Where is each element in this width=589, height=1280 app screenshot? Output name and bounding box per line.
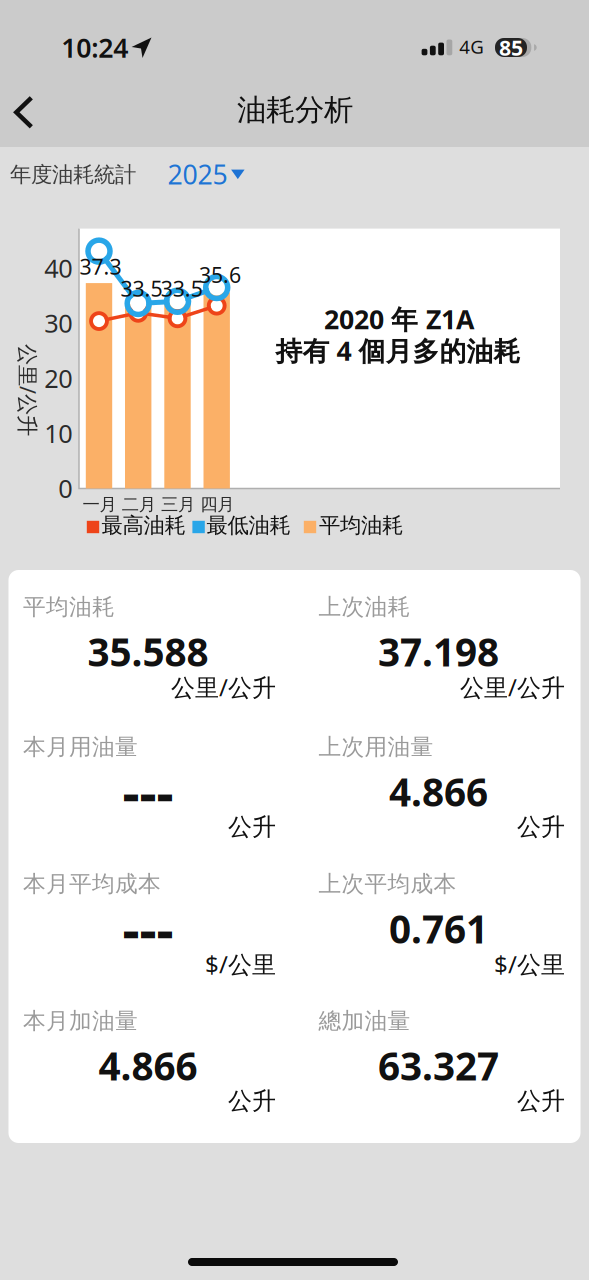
staticText: 公里/公升 (0, 376, 74, 404)
staticText: 年度油耗統計 (10, 162, 136, 188)
staticText: 本月用油量 (23, 733, 138, 761)
staticText: 85 (499, 33, 523, 62)
staticText: 2020 年 Z1A (324, 301, 474, 337)
staticText: 20 (44, 361, 72, 395)
staticText: 2025 (168, 156, 228, 192)
button[interactable]: 2025 (168, 158, 250, 190)
staticText: 本月平均成本 (23, 870, 161, 898)
staticText: 持有 4 個月多的油耗 (275, 333, 520, 368)
staticText: --- (122, 893, 173, 964)
staticText: 公升 (517, 812, 565, 842)
staticText: 二月 (122, 494, 156, 515)
staticText: 公升 (228, 1086, 276, 1116)
staticText: 上次平均成本 (318, 870, 456, 898)
staticText: 公里/公升 (460, 671, 565, 703)
staticText: 63.327 (378, 1040, 499, 1091)
staticText: 上次油耗 (318, 593, 410, 621)
staticText: 35.588 (87, 626, 208, 677)
staticText: 最低油耗 (206, 512, 290, 539)
staticText: 公里/公升 (171, 671, 276, 703)
staticText: 0.761 (389, 903, 488, 954)
staticText: 公升 (228, 812, 276, 842)
staticText: 33.5 (161, 274, 203, 302)
staticText: $/公里 (494, 948, 565, 980)
staticText: $/公里 (205, 948, 276, 980)
staticText: 0 (58, 471, 72, 505)
staticText: 4G (459, 34, 484, 59)
staticText: 上次用油量 (318, 733, 433, 761)
staticText: 總加油量 (318, 1007, 410, 1035)
staticText: 油耗分析 (237, 92, 353, 128)
staticText: 4.866 (98, 1040, 197, 1091)
staticText: --- (122, 756, 173, 827)
staticText: 四月 (200, 494, 234, 515)
staticText: 平均油耗 (23, 593, 115, 621)
staticText: 35.6 (199, 260, 241, 289)
staticText: 最高油耗 (101, 512, 185, 539)
staticText: 三月 (161, 494, 195, 515)
button[interactable]: Back (7, 93, 47, 132)
staticText: 37.3 (79, 252, 121, 281)
staticText: 30 (44, 306, 72, 340)
staticText: 平均油耗 (319, 512, 403, 539)
staticText: 10 (44, 416, 72, 450)
staticText: 本月加油量 (23, 1007, 138, 1035)
staticText: 10:24 (61, 30, 128, 65)
staticText: 公升 (517, 1086, 565, 1116)
staticText: 40 (44, 251, 72, 285)
staticText: 33.5 (121, 274, 163, 302)
staticText: 一月 (82, 494, 116, 515)
staticText: 37.198 (378, 626, 499, 677)
staticText: 4.866 (389, 766, 488, 817)
